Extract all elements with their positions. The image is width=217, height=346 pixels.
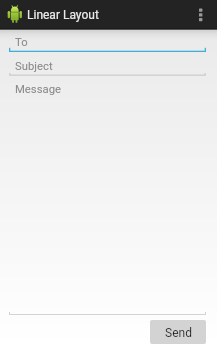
button[interactable]: To — [9, 32, 206, 52]
staticText: To — [15, 36, 28, 49]
button[interactable]: More options — [193, 0, 217, 28]
button[interactable]: Send — [150, 320, 206, 344]
staticText: Linear Layout — [27, 8, 99, 22]
staticText: Send — [165, 326, 192, 340]
button[interactable]: Message — [9, 79, 206, 315]
staticText: Message — [15, 83, 61, 96]
button[interactable]: Subject — [9, 56, 206, 76]
staticText: Subject — [15, 60, 53, 73]
